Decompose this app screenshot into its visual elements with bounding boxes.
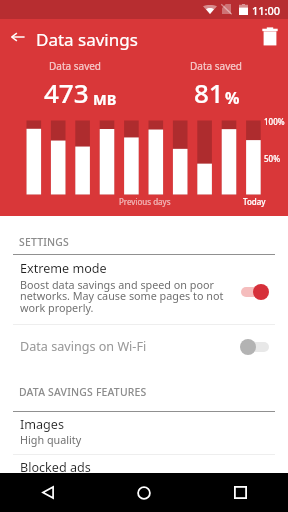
staticText: DATA SAVINGS FEATURES xyxy=(19,385,147,399)
staticText: SETTINGS xyxy=(19,235,69,249)
staticText: Data savings on Wi-Fi xyxy=(20,338,147,355)
staticText: Data savings xyxy=(36,28,138,51)
staticText: 473 xyxy=(44,75,89,110)
staticText: 100% xyxy=(264,116,285,127)
button[interactable]: Back xyxy=(0,473,96,512)
staticText: Extreme mode xyxy=(20,260,107,277)
staticText: 50% xyxy=(264,153,280,164)
button[interactable]: Back xyxy=(5,24,31,50)
button[interactable]: Images xyxy=(0,412,288,454)
staticText: Previous days xyxy=(119,196,171,207)
staticText: % xyxy=(225,87,240,109)
button[interactable]: Home xyxy=(96,473,192,512)
button[interactable]: Recent apps xyxy=(192,473,288,512)
staticText: MB xyxy=(93,89,117,109)
button[interactable]: Blocked ads xyxy=(0,455,288,473)
staticText: High quality xyxy=(20,432,82,447)
staticText: Boost data savings and speed on poor net… xyxy=(20,277,234,315)
staticText: 11:00 xyxy=(252,3,281,18)
button[interactable] xyxy=(240,337,270,357)
staticText: Today xyxy=(243,196,266,207)
button[interactable]: Extreme mode xyxy=(0,257,288,320)
staticText: Blocked ads xyxy=(20,459,91,476)
staticText: Images xyxy=(20,416,64,433)
staticText: 81 xyxy=(194,75,224,110)
button[interactable]: Data savings on Wi-Fi xyxy=(0,325,288,362)
staticText: Data saved xyxy=(49,59,101,73)
button[interactable]: Delete xyxy=(257,23,283,49)
button[interactable] xyxy=(240,282,270,302)
staticText: Data saved xyxy=(190,59,242,73)
